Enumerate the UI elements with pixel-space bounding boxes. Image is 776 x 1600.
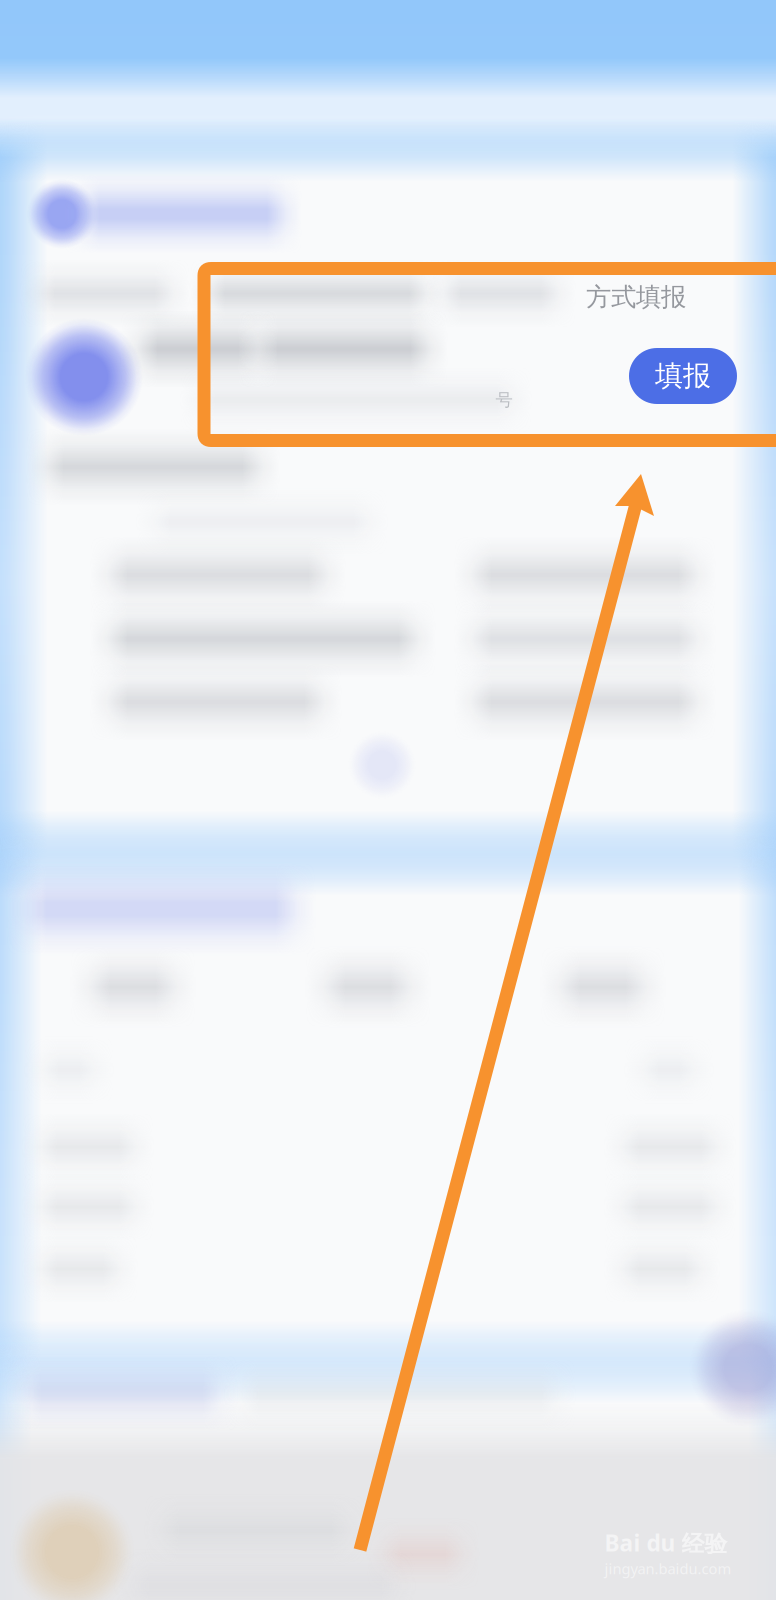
staticText: 号 [495, 389, 512, 411]
staticText: Bai du 经验 [604, 1528, 727, 1558]
button[interactable]: 填报 [629, 348, 737, 404]
button[interactable]: 方式填报 [586, 281, 686, 312]
staticText: jingyan.baidu.com [604, 1559, 731, 1578]
staticText: 填报 [655, 359, 711, 393]
staticText: 方式填报 [586, 281, 686, 312]
